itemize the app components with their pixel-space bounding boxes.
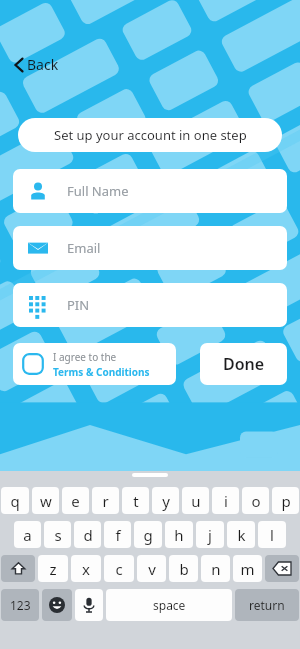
staticText: b	[179, 559, 189, 579]
button[interactable]: x	[71, 555, 101, 582]
staticText: w	[40, 491, 52, 511]
button[interactable]: r	[92, 487, 119, 514]
staticText: i	[224, 491, 228, 511]
staticText: PIN	[67, 296, 90, 314]
staticText: f	[115, 525, 121, 545]
staticText: Terms & Conditions	[53, 365, 150, 379]
button[interactable]: n	[201, 555, 230, 582]
button[interactable]: Emoji	[42, 589, 72, 621]
button[interactable]: p	[272, 487, 299, 514]
button[interactable]: u	[182, 487, 209, 514]
staticText: v	[148, 559, 156, 579]
staticText: space	[153, 597, 186, 613]
other: PIN	[29, 296, 47, 314]
staticText: Done	[223, 353, 265, 375]
button[interactable]: e	[62, 487, 89, 514]
staticText: k	[237, 525, 246, 545]
button[interactable]: Set up your account in one step	[18, 118, 282, 152]
button[interactable]: Back	[10, 52, 63, 77]
button[interactable]: o	[242, 487, 269, 514]
staticText: y	[162, 491, 170, 511]
button[interactable]: c	[104, 555, 134, 582]
button[interactable]: Person	[13, 169, 287, 213]
button[interactable]: m	[233, 555, 262, 582]
button[interactable]: Shift	[1, 555, 35, 582]
staticText: l	[270, 525, 274, 545]
staticText: t	[133, 491, 139, 511]
staticText: z	[49, 559, 57, 579]
staticText: x	[82, 559, 90, 579]
staticText: Email	[67, 239, 101, 257]
button[interactable]: j	[196, 521, 224, 548]
button[interactable]: b	[169, 555, 198, 582]
staticText: s	[54, 525, 62, 545]
staticText: j	[208, 525, 212, 545]
button[interactable]: f	[104, 521, 131, 548]
button[interactable]: return	[235, 589, 299, 621]
staticText: n	[211, 559, 221, 579]
staticText: g	[143, 525, 153, 545]
staticText: q	[10, 491, 20, 511]
other: Person	[28, 181, 48, 201]
staticText: h	[174, 525, 184, 545]
button[interactable]: s	[44, 521, 71, 548]
staticText: Set up your account in one step	[54, 126, 247, 144]
button[interactable]: l	[258, 521, 286, 548]
button[interactable]: t	[122, 487, 149, 514]
button[interactable]: g	[134, 521, 162, 548]
button[interactable]: i	[212, 487, 239, 514]
button[interactable]: a	[14, 521, 41, 548]
button[interactable]: w	[32, 487, 59, 514]
staticText: r	[102, 491, 109, 511]
staticText: Back	[27, 55, 59, 74]
staticText: d	[83, 525, 93, 545]
staticText: 123	[10, 597, 31, 613]
button[interactable]: k	[227, 521, 255, 548]
button[interactable]: d	[74, 521, 101, 548]
button[interactable]: Email	[13, 226, 287, 270]
staticText: I agree to the	[53, 350, 117, 364]
staticText: return	[249, 597, 285, 613]
button[interactable]: I agree to the	[13, 343, 176, 385]
button[interactable]: space	[106, 589, 232, 621]
button[interactable]: Backspace	[265, 555, 299, 582]
staticText: o	[251, 491, 261, 511]
button[interactable]: q	[1, 487, 29, 514]
button[interactable]: Done	[200, 343, 287, 385]
staticText: u	[191, 491, 201, 511]
staticText: e	[71, 491, 80, 511]
button[interactable]: z	[38, 555, 68, 582]
staticText: a	[23, 525, 32, 545]
button[interactable]: h	[165, 521, 193, 548]
staticText: m	[240, 559, 255, 579]
staticText: Full Name	[67, 182, 129, 200]
button[interactable]: Voice input	[75, 589, 103, 621]
button[interactable]: y	[152, 487, 179, 514]
button[interactable]: PIN	[13, 283, 287, 327]
button[interactable]: 123	[1, 589, 39, 621]
staticText: p	[281, 491, 291, 511]
button[interactable]: v	[137, 555, 166, 582]
staticText: c	[115, 559, 123, 579]
other: Email	[28, 238, 48, 258]
